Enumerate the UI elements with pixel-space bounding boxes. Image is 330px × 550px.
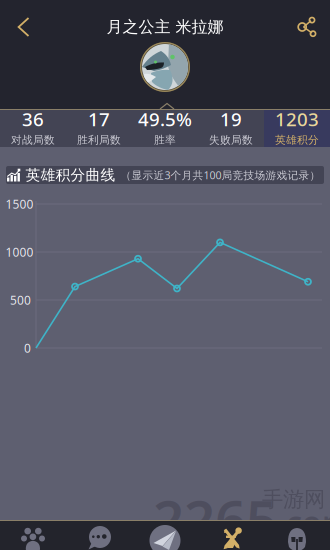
staticText: 1500 (5, 196, 33, 212)
staticText: 2265 (153, 483, 277, 550)
button[interactable]: 17 (66, 110, 132, 147)
staticText: 手游网 (262, 486, 325, 513)
staticText: 失败局数 (209, 133, 253, 146)
button[interactable]: 战绩 (198, 521, 264, 550)
staticText: 胜率 (154, 133, 176, 146)
staticText: 500 (10, 292, 31, 308)
staticText: 英雄积分 (275, 133, 319, 146)
button[interactable]: 返回 (0, 6, 47, 48)
button[interactable]: 发现 (132, 521, 198, 550)
button[interactable]: 好友 (0, 521, 66, 550)
button[interactable]: 分享 (283, 6, 330, 48)
button[interactable]: 英雄 (264, 521, 330, 550)
staticText: 17 (88, 107, 110, 131)
staticText: 36 (22, 107, 44, 131)
staticText: 对战局数 (11, 133, 55, 146)
staticText: 英雄积分曲线 (25, 166, 115, 184)
button[interactable]: 1203 (264, 110, 330, 147)
button[interactable]: 36 (0, 110, 66, 147)
staticText: 胜利局数 (77, 133, 121, 146)
button[interactable]: 19 (198, 110, 264, 147)
staticText: 月之公主 米拉娜 (106, 17, 223, 37)
staticText: （显示近3个月共100局竞技场游戏记录） (120, 168, 320, 182)
staticText: 19 (220, 107, 242, 131)
staticText: .com (277, 501, 330, 543)
button[interactable]: 消息 (66, 521, 132, 550)
staticText: 0 (24, 340, 31, 356)
staticText: 1203 (275, 107, 319, 131)
staticText: 49.5% (138, 107, 192, 131)
button[interactable]: 49.5% (132, 110, 198, 147)
staticText: 1000 (5, 244, 33, 260)
